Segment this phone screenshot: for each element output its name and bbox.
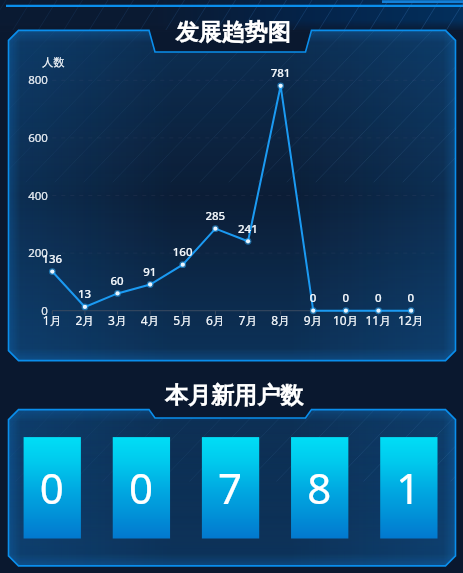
- button[interactable]: 数字 8: [291, 437, 348, 538]
- button[interactable]: 数字 0: [24, 437, 81, 538]
- button[interactable]: 数字 1: [380, 437, 437, 538]
- button[interactable]: 发展趋势图 折线图: [9, 30, 456, 360]
- button[interactable]: 本月新用户数 00781: [9, 410, 456, 566]
- button[interactable]: 数字 0: [113, 437, 170, 538]
- button[interactable]: 数字 7: [202, 437, 259, 538]
